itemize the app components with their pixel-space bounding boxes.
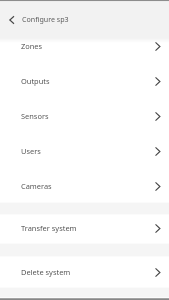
staticText: Delete system — [21, 267, 71, 277]
staticText: Outputs — [21, 76, 50, 86]
staticText: Users — [21, 146, 41, 156]
button[interactable]: Sensors — [0, 99, 169, 134]
staticText: Sensors — [21, 111, 49, 121]
staticText: Zones — [21, 41, 43, 51]
staticText: Transfer system — [21, 223, 77, 233]
button[interactable]: Navigate up — [1, 9, 23, 31]
button[interactable]: Delete system — [0, 255, 169, 290]
staticText: Cameras — [21, 181, 52, 191]
button[interactable]: Cameras — [0, 169, 169, 204]
button[interactable]: Zones — [0, 29, 169, 64]
staticText: Configure sp3 — [22, 14, 69, 24]
button[interactable]: Transfer system — [0, 211, 169, 246]
button[interactable]: Outputs — [0, 64, 169, 99]
button[interactable]: Users — [0, 134, 169, 169]
